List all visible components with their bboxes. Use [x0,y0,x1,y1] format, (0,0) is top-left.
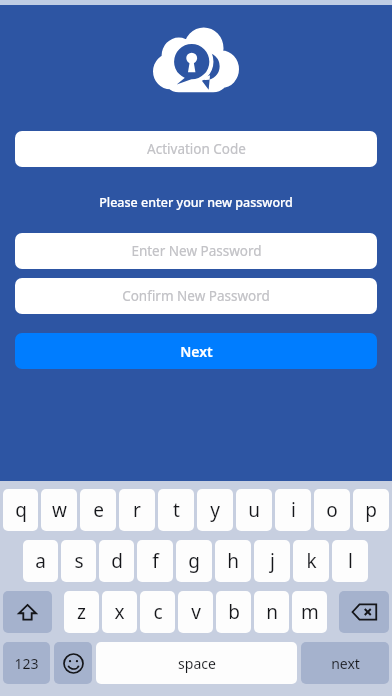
staticText: 123 [14,654,39,673]
button[interactable]: Activation Code [15,131,377,167]
staticText: j [270,548,275,574]
button[interactable]: z [64,591,99,633]
staticText: Next [180,342,213,361]
button[interactable]: l [332,540,368,582]
staticText: v [191,599,201,625]
button[interactable]: d [99,540,134,582]
button[interactable]: i [275,489,311,531]
button[interactable]: s [61,540,96,582]
button[interactable]: o [314,489,350,531]
button[interactable]: Confirm New Password [15,278,377,314]
staticText: d [111,548,123,574]
button[interactable]: m [292,591,327,633]
staticText: t [173,497,180,523]
staticText: i [291,497,296,523]
staticText: p [365,497,377,523]
button[interactable]: r [119,489,155,531]
staticText: x [114,599,125,625]
button[interactable]: p [353,489,389,531]
staticText: u [248,497,260,523]
button[interactable]: b [216,591,251,633]
staticText: h [227,548,239,574]
button[interactable]: Emoji [54,642,92,684]
button[interactable]: x [102,591,137,633]
staticText: b [228,599,240,625]
button[interactable]: w [41,489,77,531]
staticText: y [210,497,220,523]
staticText: Please enter your new password [99,194,293,211]
button[interactable]: Shift [3,591,52,633]
button[interactable]: v [178,591,213,633]
button[interactable]: k [293,540,329,582]
staticText: r [133,497,141,523]
staticText: space [178,654,216,673]
staticText: next [331,654,360,673]
button[interactable]: t [158,489,194,531]
staticText: Enter New Password [131,242,262,260]
button[interactable]: Backspace [339,591,389,633]
button[interactable]: g [176,540,212,582]
button[interactable]: j [254,540,290,582]
staticText: o [326,497,338,523]
staticText: l [348,548,353,574]
staticText: n [266,599,278,625]
staticText: q [15,497,27,523]
button[interactable]: Enter New Password [15,233,377,269]
staticText: Confirm New Password [122,287,270,305]
button[interactable]: q [3,489,38,531]
button[interactable]: y [197,489,233,531]
button[interactable]: space [96,642,297,684]
staticText: z [77,599,86,625]
staticText: g [188,548,200,574]
staticText: e [93,497,104,523]
staticText: f [152,548,159,574]
staticText: m [301,599,319,625]
staticText: a [35,548,46,574]
button[interactable]: Next [15,333,377,369]
button[interactable]: n [254,591,289,633]
staticText: c [153,599,163,625]
button[interactable]: next [301,642,389,684]
button[interactable]: c [140,591,175,633]
button[interactable]: h [215,540,251,582]
staticText: Activation Code [147,140,246,158]
button[interactable]: a [23,540,58,582]
button[interactable]: u [236,489,272,531]
staticText: w [52,497,67,523]
staticText: s [74,548,84,574]
button[interactable]: e [80,489,116,531]
button[interactable]: f [137,540,173,582]
staticText: k [306,548,317,574]
button[interactable]: 123 [3,642,50,684]
